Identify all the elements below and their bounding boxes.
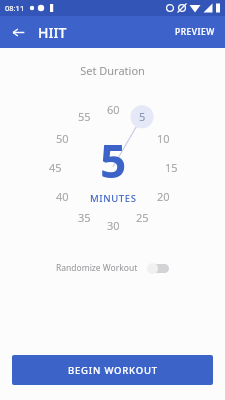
staticText: Randomize Workout <box>56 262 138 274</box>
staticText: 55 <box>78 109 91 124</box>
staticText: 20 <box>157 189 170 204</box>
staticText: 60 <box>107 102 120 117</box>
staticText: MINUTES <box>90 192 137 205</box>
staticText: 08:11 <box>5 3 25 13</box>
staticText: BEGIN WORKOUT <box>68 364 158 377</box>
staticText: 45 <box>49 160 62 175</box>
staticText: 5 <box>139 109 146 124</box>
staticText: 40 <box>56 189 69 204</box>
button[interactable]: Duration dial <box>38 92 188 242</box>
staticText: 10 <box>157 131 170 146</box>
staticText: 50 <box>56 131 69 146</box>
button[interactable]: BEGIN WORKOUT <box>12 355 213 385</box>
staticText: 35 <box>78 210 91 225</box>
staticText: 25 <box>136 210 149 225</box>
staticText: PREVIEW <box>175 26 215 38</box>
button[interactable]: Randomize Workout <box>0 256 225 280</box>
staticText: Set Duration <box>0 63 225 78</box>
button[interactable]: PREVIEW <box>169 20 221 44</box>
button[interactable]: Back <box>5 19 31 45</box>
staticText: 5 <box>100 129 127 192</box>
staticText: 15 <box>165 160 178 175</box>
staticText: HIIT <box>38 23 67 42</box>
staticText: 30 <box>107 218 120 233</box>
